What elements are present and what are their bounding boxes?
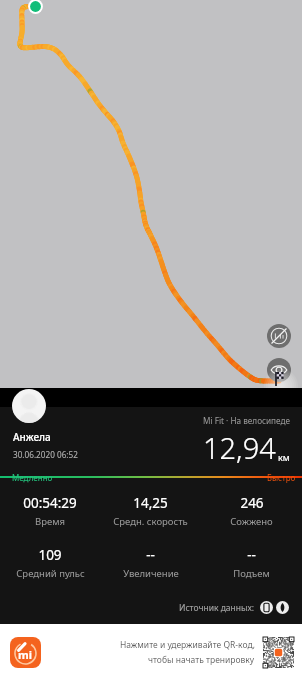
staticText: Анжела xyxy=(13,430,51,444)
staticText: Время xyxy=(35,515,65,528)
staticText: Mi Fit · На велосипеде xyxy=(203,415,290,426)
staticText: 14,25 xyxy=(133,494,168,512)
button[interactable]: -- xyxy=(100,546,201,580)
staticText: чтобы начать тренировку xyxy=(148,654,255,666)
button[interactable]: 14,25 xyxy=(100,494,201,528)
button[interactable]: Open Mi Fit xyxy=(10,637,41,668)
staticText: Быстро xyxy=(267,472,296,483)
button[interactable]: -- xyxy=(201,546,302,580)
staticText: Нажмите и удерживайте QR-код, xyxy=(120,639,255,651)
button[interactable]: Toggle speed units xyxy=(267,324,291,348)
button[interactable]: 246 xyxy=(201,494,302,528)
staticText: 30.06.2020 06:52 xyxy=(13,449,78,460)
staticText: Подъем xyxy=(233,567,270,580)
button[interactable]: QR code xyxy=(263,637,294,668)
staticText: -- xyxy=(146,546,155,564)
button[interactable]: 00:54:29 xyxy=(0,494,100,528)
staticText: Средний пульс xyxy=(16,567,85,580)
staticText: Медленно xyxy=(12,472,53,483)
button[interactable]: Toggle map overlay xyxy=(267,358,291,382)
staticText: 00:54:29 xyxy=(23,494,77,512)
button[interactable]: Profile photo xyxy=(12,389,46,423)
button[interactable]: 109 xyxy=(0,546,100,580)
button[interactable]: Источник данных: xyxy=(179,601,289,614)
staticText: Средн. скорость xyxy=(113,515,188,528)
staticText: 246 xyxy=(240,494,264,512)
staticText: км xyxy=(278,451,290,463)
staticText: 12,94 xyxy=(203,428,276,467)
staticText: Источник данных: xyxy=(179,602,255,614)
staticText: Сожжено xyxy=(230,515,273,528)
staticText: mi xyxy=(18,647,33,662)
staticText: 109 xyxy=(38,546,62,564)
staticText: -- xyxy=(247,546,256,564)
staticText: Увеличение xyxy=(123,567,179,580)
